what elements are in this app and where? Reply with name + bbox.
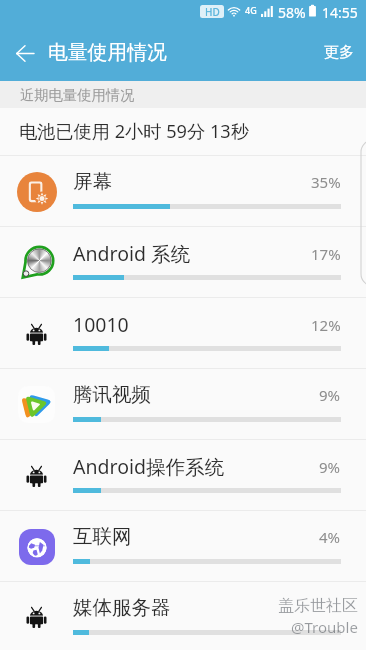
staticText: 近期电量使用情况 [20,86,135,104]
staticText: 4G [245,4,257,16]
staticText: 电池已使用 2小时 59分 13秒 [19,119,249,144]
button[interactable]: Android操作系统 [0,440,366,510]
staticText: 35% [311,172,341,192]
button[interactable]: 腾讯视频 [0,369,366,439]
staticText: 媒体服务器 [73,595,171,620]
staticText: 电量使用情况 [48,40,167,65]
staticText: 17% [311,244,341,264]
staticText: @Trouble [291,617,358,637]
staticText: 互联网 [73,524,132,549]
staticText: 12% [311,315,341,335]
button[interactable]: Back [6,34,44,72]
staticText: 14:55 [322,3,358,22]
staticText: 4% [319,527,341,547]
button[interactable]: Android 系统 [0,227,366,297]
staticText: 9% [319,385,341,405]
staticText: 58% [278,3,306,22]
staticText: Android 系统 [73,240,191,267]
staticText: 更多 [324,43,354,62]
button[interactable]: 媒体服务器 [0,582,366,650]
staticText: 盖乐世社区 [278,596,358,616]
staticText: 9% [319,457,341,477]
button[interactable]: 屏幕 [0,156,366,226]
staticText: HD [205,5,220,18]
button[interactable]: 互联网 [0,511,366,581]
button[interactable]: 更多 [319,37,359,68]
button[interactable]: 10010 [0,298,366,368]
staticText: Android操作系统 [73,453,224,480]
staticText: 10010 [73,311,129,338]
staticText: 腾讯视频 [73,382,151,407]
staticText: 屏幕 [73,169,112,194]
